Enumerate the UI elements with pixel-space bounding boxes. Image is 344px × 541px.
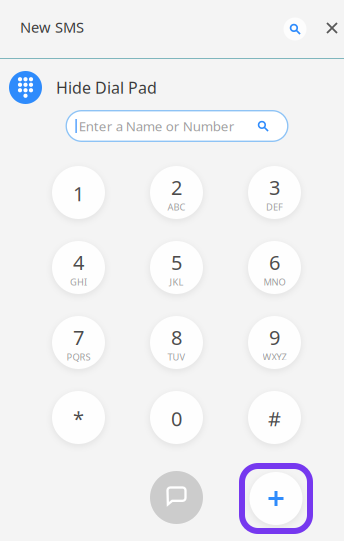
button[interactable]: 2 [127,155,225,230]
button[interactable]: 3 [225,155,323,230]
button[interactable]: 8 [127,305,225,380]
button[interactable]: 1 [29,155,127,230]
button[interactable]: 0 [127,380,225,455]
button[interactable]: 9 [225,305,323,380]
button[interactable]: * [29,380,127,455]
staticText: GHI [70,276,87,288]
button[interactable]: 5 [127,230,225,305]
staticText: MNO [263,276,285,288]
button[interactable]: Close [320,17,344,41]
staticText: 4 [73,249,84,276]
staticText: 5 [171,249,182,276]
staticText: TUV [167,351,185,363]
button[interactable]: 4 [29,230,127,305]
staticText: # [268,405,281,432]
button[interactable]: Hide Dial Pad [0,59,344,105]
button[interactable]: 7 [29,305,127,380]
staticText: 6 [269,249,280,276]
staticText: 9 [269,324,280,351]
staticText: DEF [266,201,283,213]
staticText: Enter a Name or Number [79,117,235,135]
staticText: WXYZ [262,351,286,363]
button[interactable]: 6 [225,230,323,305]
staticText: 7 [73,324,84,351]
staticText: New SMS [20,17,84,37]
staticText: 1 [73,180,84,207]
staticText: 3 [269,174,280,201]
staticText: * [73,405,84,432]
staticText: ABC [167,201,185,213]
staticText: 0 [171,405,182,432]
staticText: Hide Dial Pad [56,77,157,98]
button[interactable]: Add contact [239,463,313,534]
staticText: JKL [169,276,183,288]
staticText: 8 [171,324,182,351]
button[interactable]: # [225,380,323,455]
button[interactable]: Search [280,14,310,44]
staticText: PQRS [66,351,90,363]
button[interactable]: Enter a Name or Number [65,110,288,142]
staticText: 2 [171,174,182,201]
button[interactable]: Messages [127,463,225,532]
